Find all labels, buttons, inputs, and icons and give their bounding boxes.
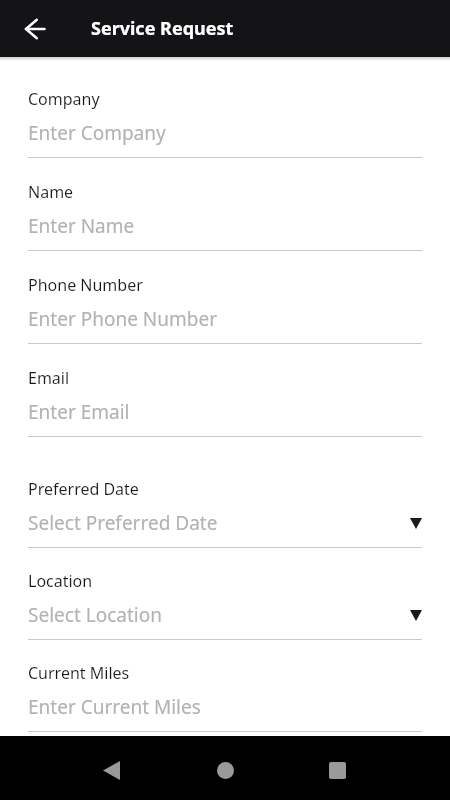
staticText: Enter Company: [28, 120, 422, 146]
staticText: Phone Number: [28, 274, 143, 296]
button[interactable]: [89, 748, 133, 792]
button[interactable]: Select Location: [28, 602, 422, 628]
staticText: Service Request: [91, 16, 234, 41]
button[interactable]: Enter Phone Number: [28, 306, 422, 332]
button[interactable]: [0, 0, 66, 57]
staticText: Enter Email: [28, 399, 422, 425]
button[interactable]: Enter Current Miles: [28, 694, 422, 720]
button[interactable]: Enter Name: [28, 213, 422, 239]
button[interactable]: [203, 748, 247, 792]
button[interactable]: Enter Company: [28, 120, 422, 146]
staticText: Preferred Date: [28, 478, 139, 500]
staticText: Enter Phone Number: [28, 306, 422, 332]
staticText: Current Miles: [28, 662, 130, 684]
staticText: Select Location: [28, 602, 410, 628]
staticText: Location: [28, 570, 93, 592]
button[interactable]: Select Preferred Date: [28, 510, 422, 536]
button[interactable]: [315, 748, 359, 792]
staticText: Enter Name: [28, 213, 422, 239]
staticText: Select Preferred Date: [28, 510, 410, 536]
staticText: Name: [28, 181, 74, 203]
button[interactable]: Enter Email: [28, 399, 422, 425]
staticText: Company: [28, 88, 100, 110]
staticText: Email: [28, 367, 70, 389]
staticText: Enter Current Miles: [28, 694, 422, 720]
